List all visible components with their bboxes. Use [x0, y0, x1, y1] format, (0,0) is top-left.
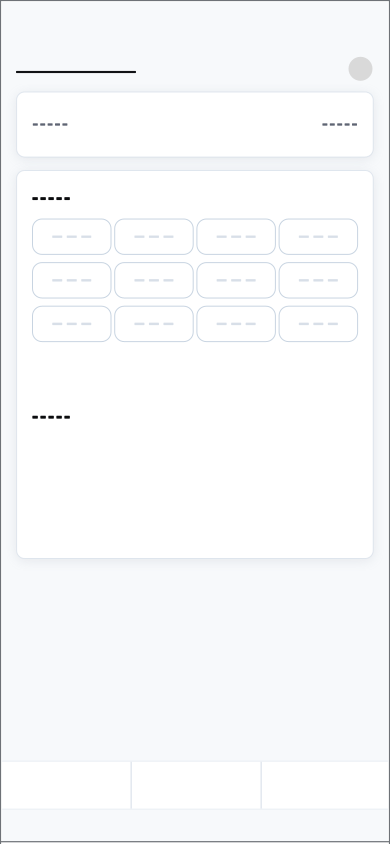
button[interactable]: Summary [17, 92, 373, 157]
button[interactable]: Option [197, 219, 275, 254]
button[interactable]: Option [115, 263, 193, 298]
button[interactable]: First tab [0, 761, 130, 809]
button[interactable]: Option [32, 263, 111, 298]
button[interactable]: Option [279, 263, 358, 298]
button[interactable]: Third tab [262, 761, 389, 809]
button[interactable]: Option [32, 306, 111, 342]
button[interactable]: Option [279, 306, 358, 342]
button[interactable]: Option [32, 219, 111, 254]
button[interactable]: Option [197, 306, 275, 342]
button[interactable]: Profile [348, 57, 372, 81]
button[interactable]: Option [197, 263, 275, 298]
button[interactable]: Option [279, 219, 358, 254]
button[interactable]: Option [115, 219, 193, 254]
button[interactable]: Option [115, 306, 193, 342]
